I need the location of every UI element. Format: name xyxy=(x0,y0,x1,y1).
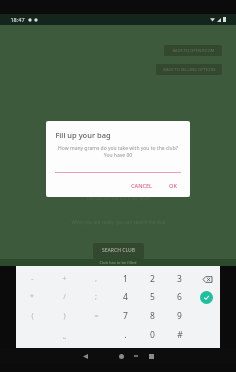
button[interactable]: 3 xyxy=(166,270,193,288)
button[interactable]: Back xyxy=(80,351,90,361)
button[interactable]: CANCEL xyxy=(127,180,156,191)
staticText: . xyxy=(124,329,127,341)
staticText: 7 xyxy=(123,310,128,322)
button[interactable]: Recents xyxy=(146,351,156,361)
button[interactable]: OK xyxy=(165,180,181,191)
button[interactable]: 6 xyxy=(166,288,193,306)
button[interactable]: # xyxy=(166,325,193,344)
button[interactable]: 9 xyxy=(166,306,193,325)
staticText: ) xyxy=(63,311,66,321)
button[interactable]: 8 xyxy=(139,306,166,325)
button[interactable]: Home xyxy=(116,351,126,361)
staticText: # xyxy=(177,329,183,341)
button[interactable]: Enter xyxy=(200,291,213,304)
button[interactable]: / xyxy=(48,288,80,306)
button[interactable]: 0 xyxy=(139,325,166,344)
staticText: 8 xyxy=(150,310,155,322)
staticText: - xyxy=(31,274,34,284)
staticText: Fill up your bag xyxy=(55,130,111,140)
staticText: ⎵ xyxy=(63,331,66,338)
staticText: 0 xyxy=(150,329,155,341)
button[interactable]: 7 xyxy=(112,306,139,325)
staticText: ; xyxy=(95,292,97,302)
staticText: How many grams do you take with you to t… xyxy=(55,145,181,159)
staticText: 4 xyxy=(123,291,128,303)
staticText: , xyxy=(95,274,97,284)
button[interactable]: = xyxy=(80,306,112,325)
button[interactable]: + xyxy=(48,270,80,288)
staticText: / xyxy=(63,292,66,302)
button[interactable]: . xyxy=(112,325,139,344)
staticText: + xyxy=(62,274,67,284)
staticText: 2 xyxy=(150,273,155,285)
button[interactable]: SEARCH CLUB xyxy=(93,243,144,259)
staticText: ( xyxy=(31,311,34,321)
button[interactable]: ⎵ xyxy=(48,325,80,344)
staticText: Club has to be filled xyxy=(99,260,137,265)
button[interactable]: 2 xyxy=(139,270,166,288)
staticText: When you are ready, you can search the c… xyxy=(71,219,166,225)
staticText: SEARCH CLUB xyxy=(102,247,135,254)
staticText: 9 xyxy=(177,310,182,322)
staticText: Your Club is currently open to the club xyxy=(78,187,159,193)
staticText: 18:47 xyxy=(10,16,25,23)
staticText: * xyxy=(30,292,34,302)
button[interactable]: ( xyxy=(16,306,48,325)
staticText: 6 xyxy=(177,291,182,303)
button[interactable]: ) xyxy=(48,306,80,325)
staticText: You can set the price per gram xyxy=(86,195,151,201)
button[interactable]: 4 xyxy=(112,288,139,306)
staticText: = xyxy=(94,311,99,321)
button[interactable]: * xyxy=(16,288,48,306)
button[interactable]: 1 xyxy=(112,270,139,288)
staticText: CANCEL xyxy=(131,182,152,189)
button[interactable]: 5 xyxy=(139,288,166,306)
staticText: BACK TO SELLING OPTIONS xyxy=(163,67,216,72)
staticText: OK xyxy=(169,182,177,189)
button[interactable]: BACK TO OPEN ROOM xyxy=(164,45,222,56)
staticText: 3 xyxy=(177,273,182,285)
button[interactable]: Backspace xyxy=(200,272,214,286)
staticText: 5 xyxy=(150,291,155,303)
button[interactable]: BACK TO SELLING OPTIONS xyxy=(156,64,222,75)
staticText: 1 xyxy=(123,273,128,285)
staticText: BACK TO OPEN ROOM xyxy=(172,48,215,53)
